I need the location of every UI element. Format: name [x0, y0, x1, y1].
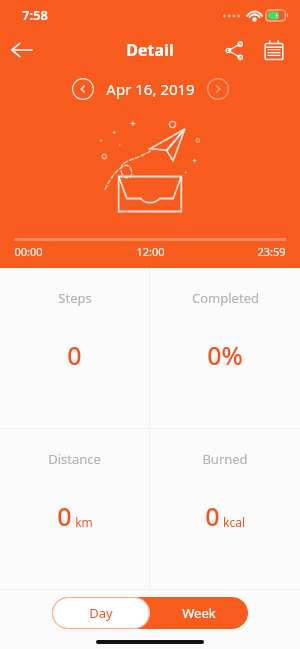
- staticText: 0: [67, 338, 82, 372]
- button[interactable]: Back: [0, 30, 44, 70]
- staticText: 0: [57, 499, 72, 533]
- staticText: Detail: [126, 39, 174, 61]
- button[interactable]: Week: [150, 597, 248, 629]
- staticText: Apr 16, 2019: [106, 79, 195, 99]
- staticText: Completed: [192, 289, 259, 307]
- button[interactable]: Day: [52, 597, 150, 629]
- staticText: Steps: [58, 289, 92, 307]
- button[interactable]: Share: [214, 30, 254, 70]
- button[interactable]: Next day: [203, 74, 233, 104]
- button[interactable]: Previous day: [68, 74, 98, 104]
- staticText: 00:00: [14, 244, 43, 259]
- staticText: 0: [205, 499, 220, 533]
- staticText: kcal: [223, 514, 245, 530]
- staticText: Week: [182, 604, 216, 622]
- button[interactable]: Calendar: [254, 30, 294, 70]
- staticText: Burned: [202, 450, 248, 468]
- button[interactable]: Burned: [150, 429, 300, 589]
- staticText: km: [75, 514, 93, 530]
- staticText: 12:00: [136, 244, 165, 259]
- staticText: 0%: [207, 338, 243, 372]
- staticText: 23:59: [257, 244, 286, 259]
- button[interactable]: Completed: [150, 268, 300, 428]
- staticText: Day: [89, 604, 113, 622]
- staticText: Distance: [48, 450, 101, 468]
- button[interactable]: Steps: [0, 268, 149, 428]
- button[interactable]: Distance: [0, 429, 149, 589]
- staticText: 7:58: [22, 6, 48, 24]
